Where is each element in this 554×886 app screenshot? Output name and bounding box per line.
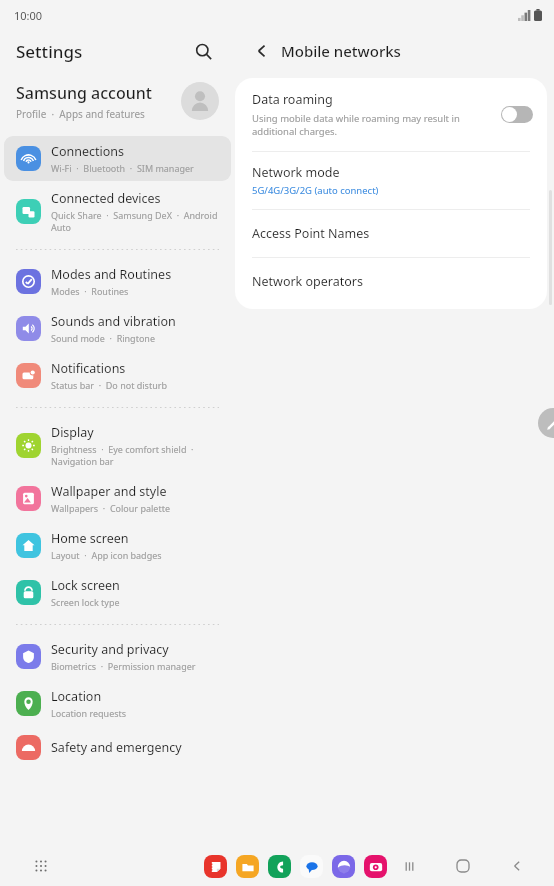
staticText: Layout · App icon badges xyxy=(51,549,162,561)
button[interactable]: My Files xyxy=(236,855,259,878)
staticText: Location requests xyxy=(51,707,127,719)
button[interactable]: Home xyxy=(452,855,474,877)
button[interactable]: Wallpaper and style xyxy=(4,476,231,521)
staticText: Quick Share · Samsung DeX · Android Auto xyxy=(51,209,221,233)
button[interactable]: Notes xyxy=(204,855,227,878)
staticText: Sounds and vibration xyxy=(51,313,176,330)
staticText: Modes · Routines xyxy=(51,285,129,297)
staticText: Access Point Names xyxy=(252,225,370,242)
button[interactable]: Connected devices xyxy=(4,183,231,240)
staticText: Location xyxy=(51,688,102,705)
button[interactable]: Modes and Routines xyxy=(4,259,231,304)
button[interactable]: Home screen xyxy=(4,523,231,568)
staticText: Connections xyxy=(51,143,124,160)
staticText: Security and privacy xyxy=(51,641,169,658)
button[interactable]: Internet xyxy=(332,855,355,878)
staticText: Data roaming xyxy=(252,91,333,108)
button[interactable]: Safety and emergency xyxy=(4,728,231,767)
staticText: Samsung account xyxy=(16,82,152,104)
staticText: Profile · Apps and features xyxy=(16,107,145,121)
button[interactable]: Back xyxy=(249,38,275,64)
staticText: Biometrics · Permission manager xyxy=(51,660,196,672)
button[interactable]: Lock screen xyxy=(4,570,231,615)
staticText: Wallpaper and style xyxy=(51,483,167,500)
staticText: Network operators xyxy=(252,273,363,290)
staticText: Using mobile data while roaming may resu… xyxy=(252,112,489,138)
button[interactable]: Camera xyxy=(364,855,387,878)
staticText: Home screen xyxy=(51,530,129,547)
button[interactable]: Data roaming xyxy=(235,78,547,151)
button[interactable]: Edit xyxy=(538,408,554,438)
staticText: Safety and emergency xyxy=(51,739,182,756)
staticText: Network mode xyxy=(252,164,340,181)
staticText: Connected devices xyxy=(51,190,161,207)
staticText: Display xyxy=(51,424,94,441)
button[interactable]: Data roaming toggle xyxy=(501,106,533,123)
button[interactable]: Notifications xyxy=(4,353,231,398)
staticText: Wallpapers · Colour palette xyxy=(51,502,170,514)
staticText: Status bar · Do not disturb xyxy=(51,379,167,391)
staticText: 5G/4G/3G/2G (auto connect) xyxy=(252,184,379,197)
button[interactable]: Recents xyxy=(398,855,420,877)
button[interactable]: Back xyxy=(506,855,528,877)
button[interactable]: Samsung account xyxy=(0,72,235,130)
staticText: Settings xyxy=(16,40,83,63)
staticText: Sound mode · Ringtone xyxy=(51,332,155,344)
button[interactable]: Network mode xyxy=(235,152,547,209)
button[interactable]: All apps xyxy=(30,855,52,877)
staticText: Lock screen xyxy=(51,577,120,594)
button[interactable]: Phone xyxy=(268,855,291,878)
button[interactable]: Security and privacy xyxy=(4,634,231,679)
staticText: Brightness · Eye comfort shield · Naviga… xyxy=(51,443,221,467)
staticText: 10:00 xyxy=(14,8,43,23)
staticText: Screen lock type xyxy=(51,596,120,608)
staticText: Modes and Routines xyxy=(51,266,172,283)
button[interactable]: Connections xyxy=(4,136,231,181)
staticText: Mobile networks xyxy=(281,41,401,61)
button[interactable]: Network operators xyxy=(235,258,547,305)
button[interactable]: Messages xyxy=(300,855,323,878)
button[interactable]: Sounds and vibration xyxy=(4,306,231,351)
button[interactable]: Location xyxy=(4,681,231,726)
staticText: Notifications xyxy=(51,360,126,377)
button[interactable]: Display xyxy=(4,417,231,474)
button[interactable]: Access Point Names xyxy=(235,210,547,257)
button[interactable]: Search xyxy=(189,37,217,65)
staticText: Wi-Fi · Bluetooth · SIM manager xyxy=(51,162,194,174)
